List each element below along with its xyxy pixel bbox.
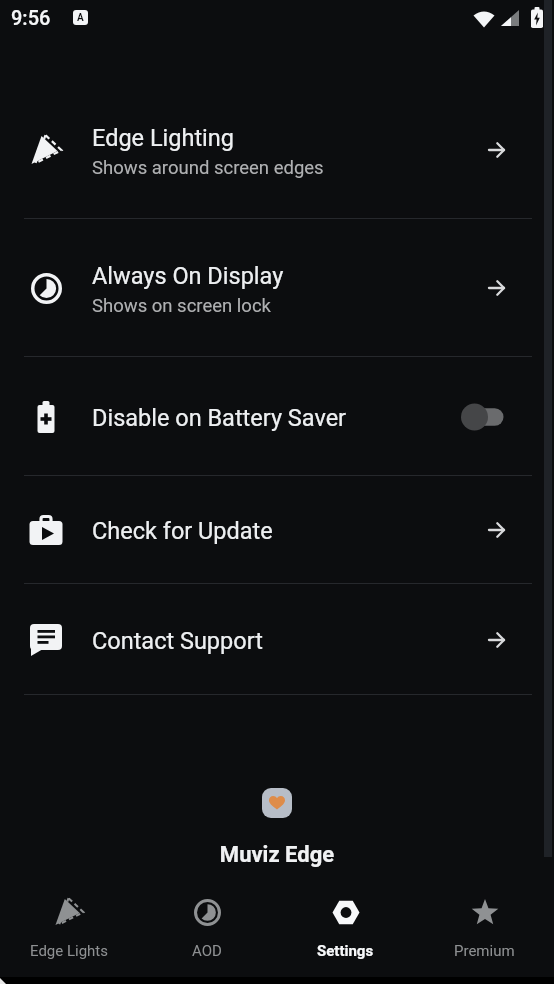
button[interactable]: Always On Display: [0, 219, 554, 357]
staticText: 9:56: [11, 6, 51, 29]
staticText: Always On Display: [92, 262, 284, 290]
button[interactable]: Settings: [276, 880, 415, 977]
staticText: Premium: [454, 942, 515, 960]
staticText: Edge Lights: [30, 942, 109, 960]
button[interactable]: Disable on Battery Saver: [0, 357, 554, 476]
staticText: Edge Lighting: [92, 124, 234, 152]
staticText: Disable on Battery Saver: [92, 404, 347, 432]
button[interactable]: Edge Lighting: [0, 81, 554, 219]
staticText: Shows on screen lock: [92, 295, 271, 317]
staticText: A: [77, 12, 84, 24]
staticText: Check for Update: [92, 517, 273, 545]
staticText: Muviz Edge: [0, 842, 554, 868]
staticText: AOD: [192, 942, 222, 960]
button[interactable]: Premium: [415, 880, 554, 977]
button[interactable]: Contact Support: [0, 584, 554, 695]
staticText: Contact Support: [92, 627, 263, 655]
button[interactable]: AOD: [138, 880, 276, 977]
button[interactable]: Edge Lights: [0, 880, 138, 977]
staticText: Settings: [317, 942, 374, 960]
button[interactable]: Check for Update: [0, 476, 554, 584]
staticText: Shows around screen edges: [92, 157, 324, 179]
